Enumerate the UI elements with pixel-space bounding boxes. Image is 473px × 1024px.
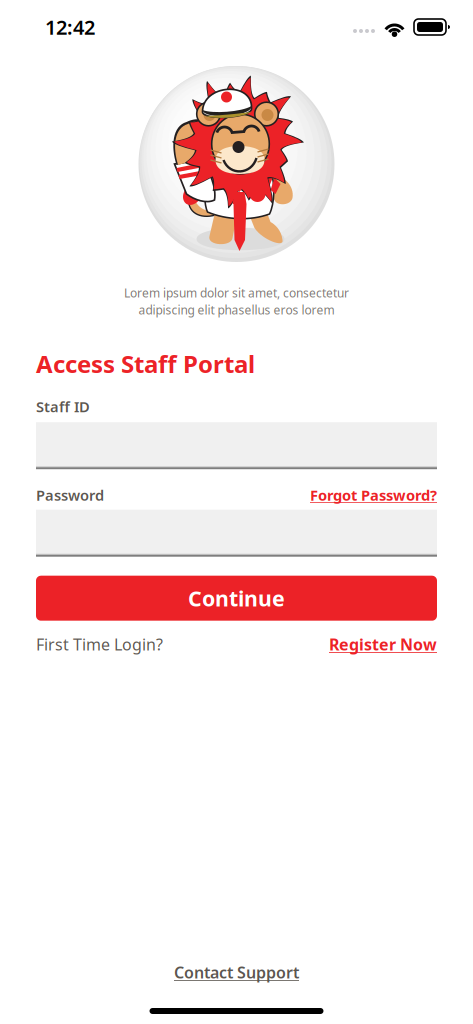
button[interactable]: Password field: [36, 510, 437, 557]
staticText: Password: [36, 485, 104, 505]
staticText: Lorem ipsum dolor sit amet, consectetur: [124, 285, 349, 301]
staticText: Continue: [188, 584, 285, 612]
staticText: Access Staff Portal: [36, 348, 255, 380]
staticText: Staff ID: [36, 397, 90, 416]
button[interactable]: Staff ID field: [36, 422, 437, 469]
staticText: 12:42: [45, 14, 95, 40]
staticText: Register Now: [329, 634, 437, 655]
button[interactable]: Contact Support: [174, 962, 299, 983]
button[interactable]: Register Now: [329, 634, 437, 655]
staticText: Forgot Password?: [310, 485, 437, 505]
button[interactable]: Continue: [36, 576, 437, 621]
button[interactable]: Forgot Password?: [310, 485, 437, 505]
staticText: adipiscing elit phasellus eros lorem: [138, 302, 334, 318]
staticText: Contact Support: [174, 962, 299, 983]
staticText: First Time Login?: [36, 634, 163, 655]
